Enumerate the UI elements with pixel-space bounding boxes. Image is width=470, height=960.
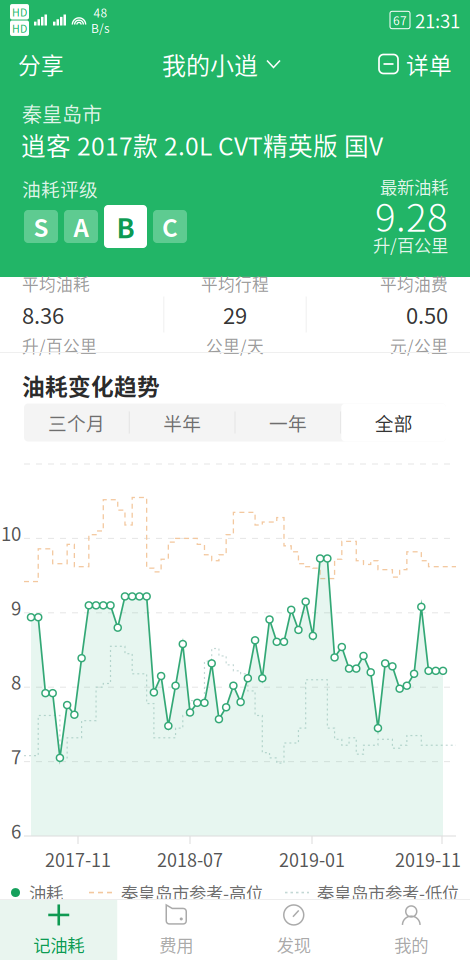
staticText: 分享 <box>18 48 64 80</box>
staticText: 油耗变化趋势 <box>22 369 160 402</box>
staticText: 10 <box>1 519 21 546</box>
staticText: 发现 <box>277 932 311 957</box>
staticText: 升/百公里 <box>373 232 448 257</box>
staticText: B/s <box>91 19 110 36</box>
button[interactable]: 我的小逍 <box>162 40 280 88</box>
staticText: 9 <box>11 594 21 621</box>
staticText: 0.50 <box>406 299 448 330</box>
button[interactable]: 记油耗 <box>0 900 117 960</box>
staticText: 平均油费 <box>380 271 448 295</box>
staticText: A <box>73 209 88 244</box>
staticText: B <box>116 207 134 246</box>
button[interactable]: 详单 <box>360 40 470 88</box>
staticText: 最新油耗 <box>380 174 448 199</box>
staticText: 8 <box>11 668 21 695</box>
staticText: 全部 <box>375 409 413 436</box>
staticText: 三个月 <box>48 409 105 436</box>
button[interactable]: 发现 <box>235 900 352 960</box>
staticText: 我的 <box>394 932 428 957</box>
staticText: 油耗评级 <box>22 175 98 202</box>
button[interactable]: 费用 <box>117 900 235 960</box>
staticText: 7 <box>11 743 21 770</box>
staticText: 平均油耗 <box>22 271 90 295</box>
staticText: 费用 <box>159 932 193 957</box>
staticText: 记油耗 <box>33 932 84 957</box>
staticText: 元/公里 <box>390 333 448 357</box>
staticText: 一年 <box>269 409 307 436</box>
staticText: C <box>162 209 178 244</box>
staticText: 我的小逍 <box>162 47 258 81</box>
staticText: 8.36 <box>22 299 64 330</box>
staticText: 秦皇岛市 <box>22 99 102 128</box>
staticText: 29 <box>223 299 247 330</box>
staticText: 2019-11 <box>395 846 461 872</box>
staticText: 公里/天 <box>206 333 264 357</box>
staticText: 48 <box>93 4 107 21</box>
staticText: 半年 <box>163 409 201 436</box>
staticText: 逍客 2017款 2.0L CVT精英版 国V <box>21 127 383 163</box>
staticText: HD <box>12 20 27 36</box>
staticText: HD <box>12 4 27 19</box>
staticText: 秦皇岛市参考-高位 <box>121 880 263 905</box>
staticText: S <box>33 209 48 244</box>
staticText: 21:31 <box>415 6 460 33</box>
staticText: 秦皇岛市参考-低位 <box>317 880 459 905</box>
button[interactable]: 三个月 <box>24 403 129 441</box>
staticText: 油耗 <box>29 880 63 905</box>
staticText: 平均行程 <box>201 271 269 295</box>
button[interactable]: 分享 <box>0 40 82 88</box>
staticText: 67 <box>393 11 407 29</box>
staticText: 升/百公里 <box>22 333 97 357</box>
staticText: 详单 <box>406 48 452 80</box>
button[interactable]: 半年 <box>130 403 235 441</box>
button[interactable]: 一年 <box>235 403 340 441</box>
staticText: 2018-07 <box>157 846 223 872</box>
staticText: 9.28 <box>375 187 448 243</box>
staticText: 6 <box>11 817 21 844</box>
button[interactable]: 我的 <box>352 900 470 960</box>
staticText: 2019-01 <box>279 846 345 872</box>
button[interactable]: 全部 <box>341 403 446 441</box>
staticText: 2017-11 <box>45 846 111 872</box>
